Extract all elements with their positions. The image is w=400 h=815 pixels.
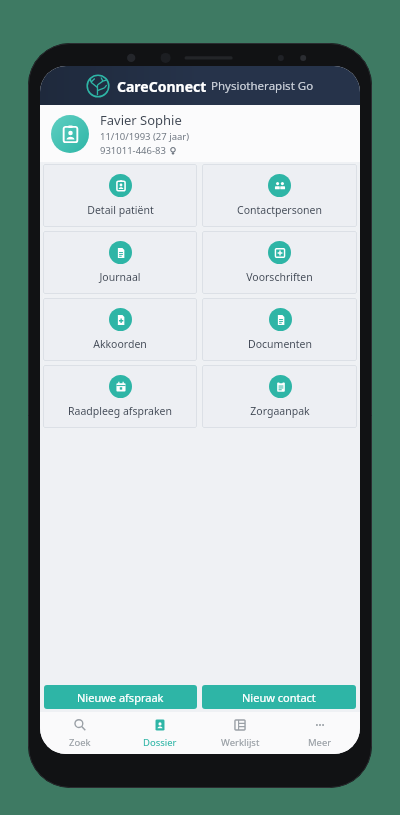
staticText: Zorgaanpak <box>250 404 310 418</box>
staticText: Dossier <box>143 736 177 749</box>
button[interactable]: Contactpersonen <box>202 164 357 227</box>
staticText: Journaal <box>99 270 141 284</box>
staticText: Nieuwe afspraak <box>77 690 164 705</box>
staticText: CareConnect <box>117 77 207 96</box>
button[interactable]: Raadpleeg afspraken <box>43 365 197 428</box>
button[interactable]: Nieuw contact <box>202 685 356 709</box>
button[interactable]: Favier Sophie <box>40 105 360 162</box>
staticText: Meer <box>308 736 332 749</box>
staticText: 11/10/1993 (27 jaar) <box>100 130 190 143</box>
button[interactable]: Documenten <box>202 298 357 361</box>
staticText: Werklijst <box>221 736 260 749</box>
button[interactable]: Journaal <box>43 231 197 294</box>
button[interactable]: Detail patiënt <box>43 164 197 227</box>
button[interactable]: Dossier <box>120 712 200 754</box>
staticText: Akkoorden <box>93 337 147 351</box>
staticText: Voorschriften <box>246 270 313 284</box>
button[interactable]: Voorschriften <box>202 231 357 294</box>
staticText: Physiotherapist Go <box>211 78 314 94</box>
button[interactable]: Zoek <box>40 712 120 754</box>
staticText: Detail patiënt <box>87 203 154 217</box>
staticText: Favier Sophie <box>100 111 182 129</box>
button[interactable]: Werklijst <box>200 712 280 754</box>
staticText: Raadpleeg afspraken <box>68 404 172 418</box>
staticText: Zoek <box>69 736 91 749</box>
button[interactable]: Akkoorden <box>43 298 197 361</box>
staticText: Contactpersonen <box>237 203 322 217</box>
staticText: Documenten <box>248 337 312 351</box>
button[interactable]: Zorgaanpak <box>202 365 357 428</box>
button[interactable]: Meer <box>280 712 360 754</box>
button[interactable]: Nieuwe afspraak <box>44 685 197 709</box>
staticText: 931011-446-83 <box>100 144 166 157</box>
staticText: Nieuw contact <box>242 690 316 705</box>
